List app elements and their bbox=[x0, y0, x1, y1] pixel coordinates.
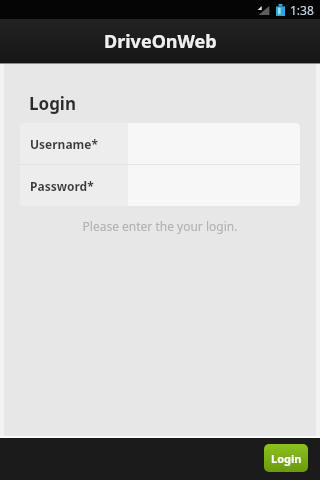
staticText: Login bbox=[29, 92, 77, 115]
staticText: Username* bbox=[30, 136, 98, 152]
button[interactable]: Username* bbox=[20, 123, 300, 164]
staticText: Please enter the your login. bbox=[20, 218, 300, 234]
button[interactable]: Login bbox=[264, 444, 308, 472]
other: Signal strength bbox=[257, 5, 270, 16]
staticText: Password* bbox=[30, 178, 94, 194]
staticText: DriveOnWeb bbox=[104, 29, 217, 54]
staticText: Login bbox=[271, 451, 302, 466]
staticText: 1:38 bbox=[290, 2, 314, 18]
button[interactable]: Password* bbox=[20, 165, 300, 206]
other: Battery bbox=[276, 4, 285, 16]
